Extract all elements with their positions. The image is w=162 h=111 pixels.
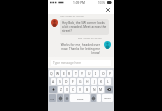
- button[interactable]: G: [77, 78, 83, 85]
- button[interactable]: Shift: [49, 86, 57, 93]
- staticText: S: [59, 79, 61, 84]
- staticText: E: [63, 71, 65, 76]
- staticText: O: [102, 71, 105, 76]
- staticText: space: [77, 97, 84, 100]
- button[interactable]: Dictate: [64, 94, 69, 102]
- staticText: Alex • Today at 1:04 pm: [60, 15, 84, 18]
- staticText: 123: [50, 97, 55, 100]
- staticText: M: [99, 87, 103, 92]
- staticText: G: [79, 79, 82, 84]
- button[interactable]: Q: [49, 70, 54, 77]
- staticText: U: [88, 71, 91, 76]
- button[interactable]: L: [105, 78, 111, 85]
- button[interactable]: O: [100, 70, 106, 77]
- button[interactable]: P: [107, 70, 113, 77]
- button[interactable]: space: [70, 94, 90, 102]
- staticText: A: [52, 79, 55, 84]
- staticText: C: [72, 87, 75, 92]
- button[interactable]: S: [57, 78, 62, 85]
- staticText: Type message here: [53, 61, 82, 65]
- staticText: R: [68, 71, 71, 76]
- staticText: W: [56, 71, 60, 76]
- button[interactable]: K: [98, 78, 104, 85]
- button[interactable]: return: [102, 94, 113, 102]
- staticText: T: [75, 71, 77, 76]
- button[interactable]: X: [64, 86, 69, 93]
- button[interactable]: N: [91, 86, 97, 93]
- staticText: Bob • Today at 1:06 pm: [78, 37, 102, 40]
- staticText: Q: [50, 71, 53, 76]
- button[interactable]: H: [84, 78, 90, 85]
- button[interactable]: W: [55, 70, 60, 77]
- button[interactable]: Works for me, headed over now. Thanks fo…: [54, 41, 102, 57]
- staticText: Hey Bob, the SW corner looks a bit crowd…: [62, 21, 107, 33]
- staticText: L: [107, 79, 109, 84]
- staticText: N: [93, 87, 96, 92]
- staticText: X: [66, 87, 68, 92]
- button[interactable]: D: [63, 78, 69, 85]
- staticText: return: [104, 97, 111, 100]
- button[interactable]: Numbers: [49, 94, 56, 102]
- button[interactable]: Z: [58, 86, 63, 93]
- button[interactable]: R: [67, 70, 72, 77]
- staticText: H: [86, 79, 89, 84]
- button[interactable]: V: [77, 86, 83, 93]
- button[interactable]: J: [91, 78, 97, 85]
- button[interactable]: Y: [79, 70, 85, 77]
- button[interactable]: I: [93, 70, 99, 77]
- button[interactable]: U: [86, 70, 92, 77]
- button[interactable]: M: [98, 86, 104, 93]
- staticText: V: [79, 87, 82, 92]
- staticText: Z: [60, 87, 62, 92]
- button[interactable]: Hey Bob, the SW corner looks a bit crowd…: [60, 19, 109, 35]
- staticText: B: [86, 87, 89, 92]
- button[interactable]: Attach: [91, 94, 96, 102]
- staticText: I: [95, 71, 97, 76]
- button[interactable]: Emoji: [57, 94, 63, 102]
- button[interactable]: Type message here: [51, 60, 111, 66]
- staticText: K: [100, 79, 103, 84]
- staticText: 1:09 PM: [73, 1, 86, 5]
- button[interactable]: [97, 94, 101, 102]
- button[interactable]: T: [73, 70, 78, 77]
- staticText: 100%: [98, 1, 106, 5]
- staticText: Works for me, headed over now. Thanks fo…: [56, 43, 100, 55]
- button[interactable]: A: [51, 78, 56, 85]
- staticText: P: [109, 71, 112, 76]
- button[interactable]: F: [70, 78, 76, 85]
- button[interactable]: C: [70, 86, 76, 93]
- staticText: D: [65, 79, 68, 84]
- staticText: J: [94, 79, 95, 84]
- staticText: F: [72, 79, 74, 84]
- staticText: Y: [81, 71, 83, 76]
- button[interactable]: Backspace: [105, 86, 113, 93]
- button[interactable]: E: [61, 70, 66, 77]
- button[interactable]: Close: [104, 6, 111, 13]
- button[interactable]: B: [84, 86, 90, 93]
